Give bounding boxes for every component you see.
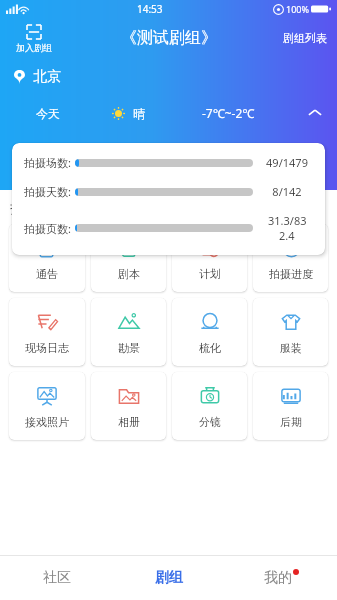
button[interactable]: 社区 [0, 556, 113, 600]
staticText: 北京 [33, 68, 61, 86]
button[interactable]: 相册 [91, 372, 166, 440]
staticText: 分镜 [199, 415, 221, 429]
staticText: 31.3/83 [268, 213, 307, 228]
staticText: 100% [286, 3, 309, 15]
staticText: 加入剧组 [16, 42, 52, 53]
button[interactable]: 剧组 [113, 556, 225, 600]
staticText: 拍摄页数: [24, 221, 71, 236]
staticText: 我的 [264, 569, 292, 587]
staticText: 拍摄天数: [24, 184, 71, 199]
button[interactable]: 剧组列表 [273, 25, 337, 51]
staticText: 剧组 [155, 569, 183, 587]
button[interactable]: 通告 [9, 224, 85, 292]
staticText: 拍摄场数: [24, 155, 71, 170]
staticText: 今天 [36, 106, 60, 121]
staticText: 《测试剧组》 [121, 28, 217, 48]
staticText: 通告 [36, 267, 58, 281]
staticText: 现场日志 [25, 341, 69, 355]
button[interactable]: 剧本 [91, 224, 166, 292]
staticText: 8/142 [272, 184, 302, 199]
staticText: 后期 [280, 415, 302, 429]
staticText: 49/1479 [266, 155, 308, 170]
staticText: 2.4 [279, 228, 295, 243]
staticText: 晴 [133, 106, 145, 121]
staticText: 勘景 [118, 341, 140, 355]
button[interactable]: 计划 [172, 224, 247, 292]
staticText: 拍摄进度 [269, 267, 313, 281]
staticText: -7℃~-2℃ [202, 105, 255, 121]
button[interactable]: 北京 [14, 66, 61, 88]
button[interactable]: 后期 [253, 372, 328, 440]
staticText: 14:53 [137, 2, 163, 16]
button[interactable]: 拍摄进度 [253, 224, 328, 292]
staticText: 剧本 [118, 267, 140, 281]
staticText: 计划 [199, 267, 221, 281]
button[interactable]: 梳化 [172, 298, 247, 366]
button[interactable]: 现场日志 [9, 298, 85, 366]
button[interactable]: 分镜 [172, 372, 247, 440]
staticText: 接戏照片 [25, 415, 69, 429]
staticText: 服装 [280, 341, 302, 355]
button[interactable]: 我的 [225, 556, 337, 600]
button[interactable]: 加入剧组 [12, 24, 56, 53]
button[interactable]: 接戏照片 [9, 372, 85, 440]
staticText: 社区 [43, 569, 71, 587]
staticText: 梳化 [199, 341, 221, 355]
button[interactable]: 今天 [0, 96, 337, 130]
staticText: 相册 [118, 415, 140, 429]
button[interactable]: 勘景 [91, 298, 166, 366]
button[interactable]: 服装 [253, 298, 328, 366]
staticText: 拍摄管理 [10, 200, 66, 218]
